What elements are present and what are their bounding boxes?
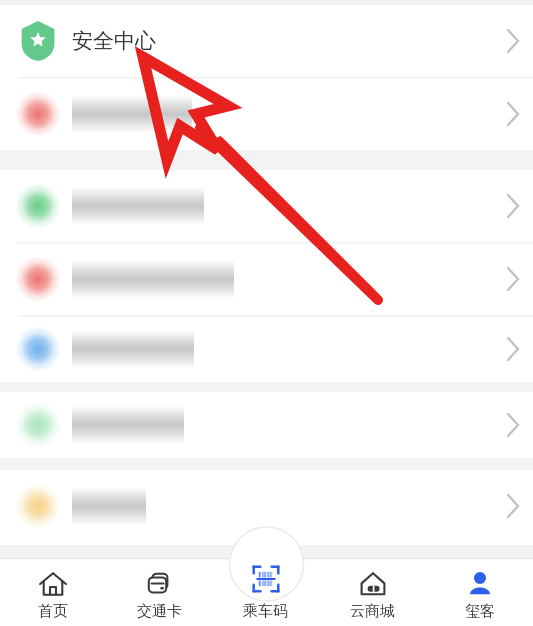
button[interactable]: Settings item — [0, 170, 533, 242]
staticText: 云商城 — [350, 602, 395, 621]
button[interactable]: Settings item — [0, 316, 533, 382]
button[interactable]: Settings item — [0, 243, 533, 315]
button[interactable]: 乘车码 — [212, 558, 319, 626]
button[interactable]: 交通卡 — [106, 558, 212, 626]
button[interactable]: Settings item — [0, 470, 533, 542]
button[interactable]: 安全中心 — [0, 5, 533, 77]
staticText: 首页 — [38, 602, 68, 621]
staticText: 玺客 — [465, 602, 495, 621]
staticText: 交通卡 — [137, 602, 182, 621]
staticText: 乘车码 — [243, 602, 288, 621]
staticText: 安全中心 — [72, 28, 156, 54]
button[interactable]: Settings item — [0, 392, 533, 458]
button[interactable]: 玺客 — [426, 558, 533, 626]
button[interactable]: Settings item — [0, 78, 533, 150]
button[interactable]: 首页 — [0, 558, 106, 626]
button[interactable]: 云商城 — [319, 558, 426, 626]
